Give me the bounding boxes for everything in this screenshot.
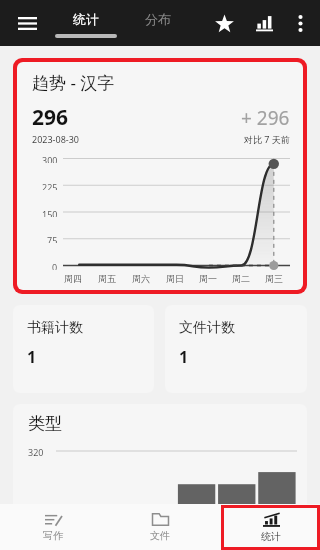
button[interactable]: 类型 [13, 404, 307, 504]
staticText: 类型 [28, 413, 62, 434]
staticText: 75 [47, 234, 58, 243]
staticText: 趋势 - 汉字 [32, 71, 115, 94]
staticText: 周二 [232, 273, 250, 284]
staticText: 对比 7 天前 [244, 133, 290, 145]
staticText: 书籍计数 [27, 319, 83, 337]
button[interactable]: 趋势 - 汉字 [17, 62, 303, 290]
button[interactable]: Favorite [204, 3, 244, 43]
staticText: 分布 [145, 11, 171, 27]
staticText: 300 [42, 154, 58, 163]
staticText: 写作 [43, 529, 63, 542]
staticText: 周一 [199, 273, 217, 284]
button[interactable]: 统计 [224, 508, 317, 547]
staticText: 296 [32, 103, 69, 132]
staticText: 1 [179, 346, 189, 368]
button[interactable]: 统计 [50, 0, 122, 46]
staticText: 225 [42, 181, 58, 190]
staticText: 150 [42, 208, 58, 217]
button[interactable]: 书籍计数 [13, 305, 154, 393]
staticText: + 296 [241, 105, 290, 131]
staticText: 1 [27, 346, 37, 368]
button[interactable]: 写作 [0, 504, 106, 550]
button[interactable]: More options [284, 7, 316, 39]
button[interactable]: 文件计数 [165, 305, 307, 393]
button[interactable]: 分布 [122, 0, 194, 46]
staticText: 320 [28, 446, 44, 458]
staticText: 统计 [73, 11, 99, 27]
staticText: 2023-08-30 [32, 133, 79, 145]
staticText: 周三 [265, 273, 283, 284]
staticText: 周六 [132, 273, 150, 284]
staticText: 周四 [64, 273, 82, 284]
staticText: 文件 [150, 529, 170, 542]
staticText: 统计 [261, 530, 281, 543]
staticText: 周日 [166, 273, 184, 284]
staticText: 文件计数 [179, 319, 235, 337]
staticText: 周五 [98, 273, 116, 284]
button[interactable]: Navigation menu [8, 4, 46, 42]
button[interactable]: Statistics chart [244, 3, 284, 43]
button[interactable]: 文件 [106, 504, 213, 550]
staticText: 0 [52, 261, 58, 270]
